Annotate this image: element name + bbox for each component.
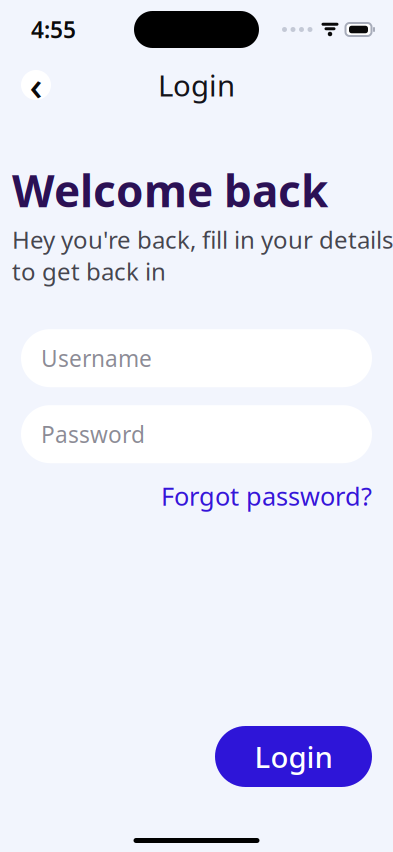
staticText: 4:55 (31, 14, 76, 44)
staticText: ‹ (29, 58, 42, 111)
button[interactable]: Password (21, 405, 372, 463)
staticText: Hey you're back, fill in your details to… (12, 223, 393, 287)
staticText: Login (254, 737, 332, 776)
button[interactable]: Forgot password? (161, 474, 372, 518)
staticText: Password (41, 419, 145, 449)
button[interactable]: Username (21, 329, 372, 387)
staticText: Welcome back (12, 161, 328, 219)
staticText: Username (41, 343, 152, 373)
button[interactable]: Back (21, 70, 51, 100)
button[interactable]: Login (215, 726, 372, 787)
staticText: Login (158, 65, 235, 104)
staticText: Forgot password? (161, 479, 372, 513)
